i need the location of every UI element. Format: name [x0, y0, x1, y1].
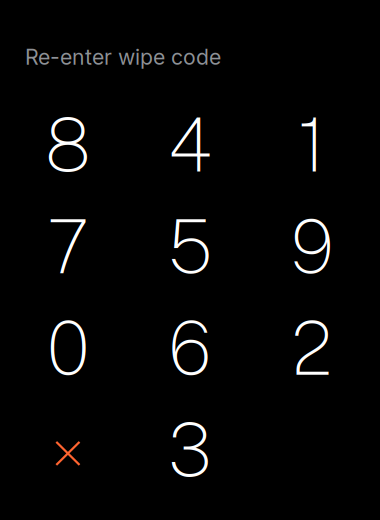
staticText: 4 [168, 102, 212, 188]
staticText: 7 [47, 203, 89, 290]
staticText: 1 [298, 102, 326, 188]
button[interactable]: 5 [129, 196, 251, 297]
button[interactable]: 7 [7, 196, 129, 297]
button[interactable]: 9 [251, 196, 373, 297]
button[interactable]: 1 [251, 94, 373, 196]
button[interactable]: Delete [7, 399, 129, 501]
button[interactable]: 6 [129, 297, 251, 399]
button[interactable]: 0 [7, 297, 129, 399]
staticText: Re-enter wipe code [25, 44, 221, 70]
staticText: 2 [291, 305, 332, 391]
staticText: 6 [168, 305, 211, 391]
staticText: 9 [290, 203, 333, 290]
staticText: 5 [168, 203, 212, 290]
button[interactable]: 8 [7, 94, 129, 196]
button[interactable]: 3 [129, 399, 251, 501]
staticText: 8 [45, 102, 91, 188]
staticText: 0 [47, 305, 89, 391]
staticText: 3 [168, 407, 212, 493]
button[interactable]: 4 [129, 94, 251, 196]
button[interactable]: 2 [251, 297, 373, 399]
